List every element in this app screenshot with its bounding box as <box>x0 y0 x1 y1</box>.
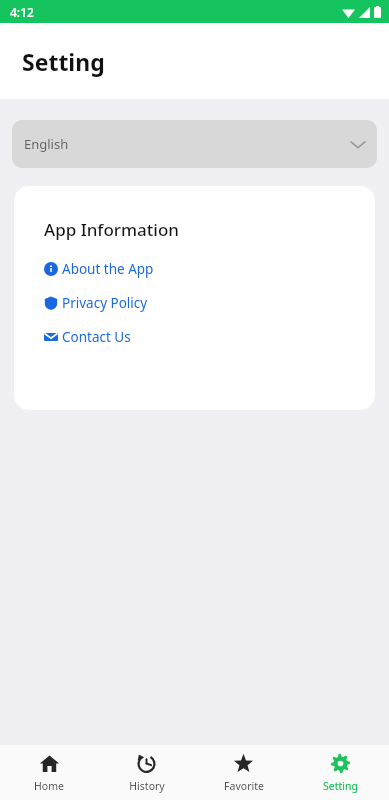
button[interactable]: About the App <box>44 258 154 279</box>
staticText: Setting <box>22 46 105 77</box>
button[interactable]: Setting <box>292 745 389 800</box>
button[interactable]: Favorite <box>195 745 292 800</box>
staticText: English <box>24 135 69 153</box>
button[interactable]: History <box>98 745 195 800</box>
button[interactable]: English <box>12 120 377 168</box>
staticText: History <box>129 779 165 793</box>
button[interactable]: Home <box>0 745 98 800</box>
button[interactable]: Contact Us <box>44 326 131 347</box>
staticText: Contact Us <box>62 328 131 346</box>
staticText: 4:12 <box>10 4 34 20</box>
button[interactable]: Privacy Policy <box>44 292 148 313</box>
staticText: About the App <box>62 260 154 278</box>
staticText: App Information <box>44 218 179 241</box>
staticText: Favorite <box>224 779 264 793</box>
staticText: Setting <box>323 779 358 793</box>
staticText: Home <box>34 779 64 793</box>
staticText: Privacy Policy <box>62 294 148 312</box>
